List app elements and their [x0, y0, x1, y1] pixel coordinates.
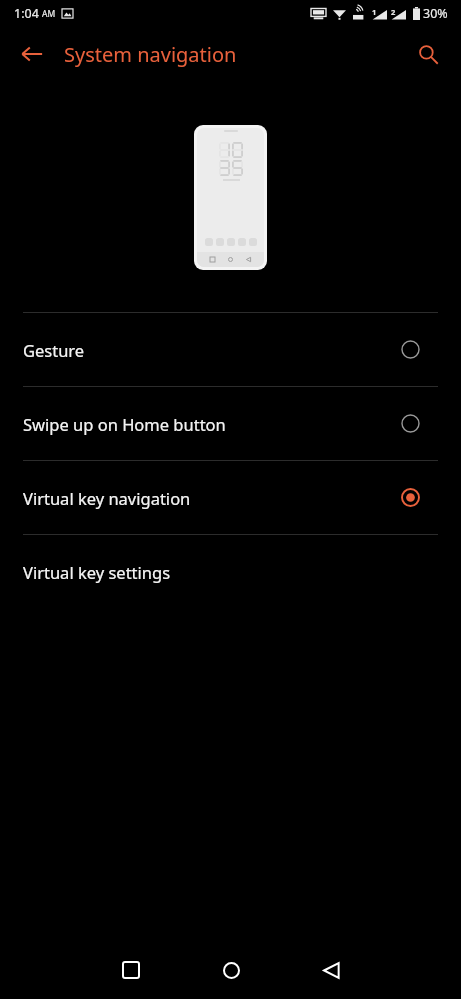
staticText: System navigation: [64, 41, 237, 68]
button[interactable]: Virtual key navigation: [0, 461, 461, 534]
button[interactable]: Virtual key settings: [0, 535, 461, 608]
button[interactable]: Gesture: [0, 313, 461, 386]
staticText: Gesture: [23, 339, 85, 361]
button[interactable]: Back: [12, 34, 52, 74]
button[interactable]: Home: [207, 946, 255, 994]
button[interactable]: Recent apps: [107, 946, 155, 994]
staticText: Swipe up on Home button: [23, 413, 226, 435]
button[interactable]: Search: [408, 34, 448, 74]
button[interactable]: Back: [307, 946, 355, 994]
staticText: Virtual key settings: [23, 561, 171, 583]
button[interactable]: Swipe up on Home button: [0, 387, 461, 460]
staticText: 2: [391, 7, 396, 17]
staticText: 1:04: [14, 5, 39, 22]
staticText: AM: [42, 8, 56, 20]
staticText: 30%: [423, 5, 448, 22]
staticText: 1: [372, 7, 377, 17]
staticText: Virtual key navigation: [23, 487, 191, 509]
